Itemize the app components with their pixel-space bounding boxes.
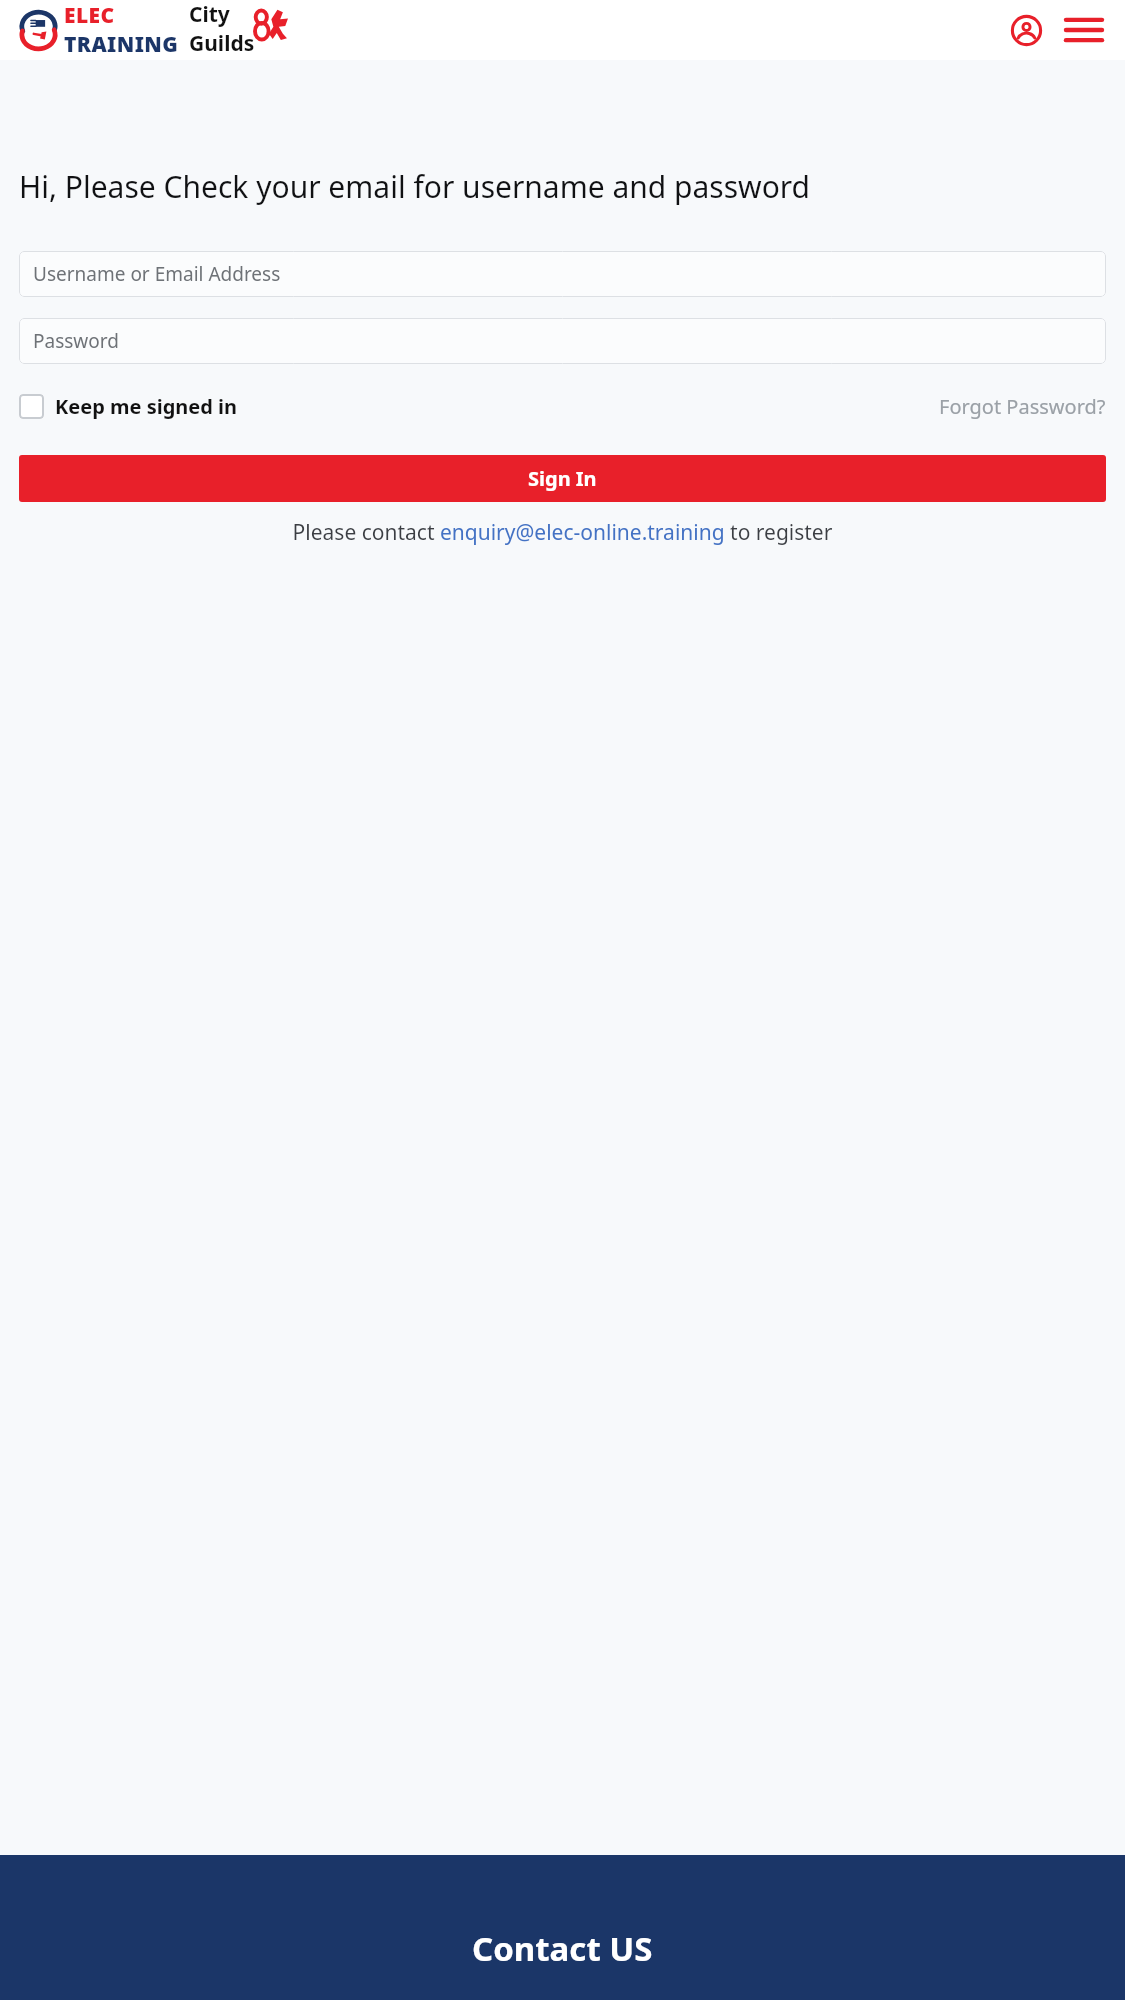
button[interactable]: Forgot Password? bbox=[939, 393, 1106, 420]
button[interactable]: Contact US bbox=[472, 1926, 653, 1971]
staticText: Sign In bbox=[528, 465, 597, 492]
button[interactable]: Account bbox=[1005, 9, 1047, 51]
staticText: TRAINING bbox=[64, 30, 179, 59]
staticText: City bbox=[189, 0, 230, 29]
button[interactable]: Sign In bbox=[19, 455, 1106, 502]
staticText: Username or Email Address bbox=[33, 261, 281, 287]
staticText: Guilds bbox=[189, 29, 255, 58]
button[interactable]: Password bbox=[19, 318, 1106, 364]
button[interactable]: Username or Email Address bbox=[19, 251, 1106, 297]
staticText: Hi, Please Check your email for username… bbox=[19, 166, 1106, 207]
button[interactable]: Menu bbox=[1063, 9, 1105, 51]
staticText: Keep me signed in bbox=[55, 393, 238, 420]
button[interactable]: Please contact enquiry@elec-online.train… bbox=[22, 518, 1103, 547]
staticText: Please contact enquiry@elec-online.train… bbox=[22, 518, 1103, 547]
staticText: Contact US bbox=[472, 1926, 653, 1971]
button[interactable]: Keep me signed in bbox=[19, 393, 238, 420]
staticText: Forgot Password? bbox=[939, 393, 1106, 420]
staticText: Password bbox=[33, 328, 119, 354]
staticText: ELEC bbox=[64, 1, 115, 30]
